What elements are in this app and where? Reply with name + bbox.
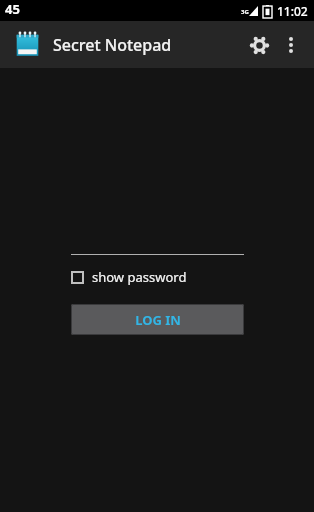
button[interactable]: LOG IN: [71, 304, 244, 335]
staticText: 45: [5, 0, 20, 18]
button[interactable]: Settings: [242, 28, 276, 62]
staticText: 3G: [241, 8, 249, 16]
button[interactable]: More options: [276, 30, 306, 60]
staticText: 11:02: [277, 3, 308, 19]
staticText: Secret Notepad: [53, 34, 172, 56]
staticText: LOG IN: [135, 311, 181, 329]
staticText: show password: [92, 268, 187, 286]
button[interactable]: show password: [71, 267, 187, 287]
